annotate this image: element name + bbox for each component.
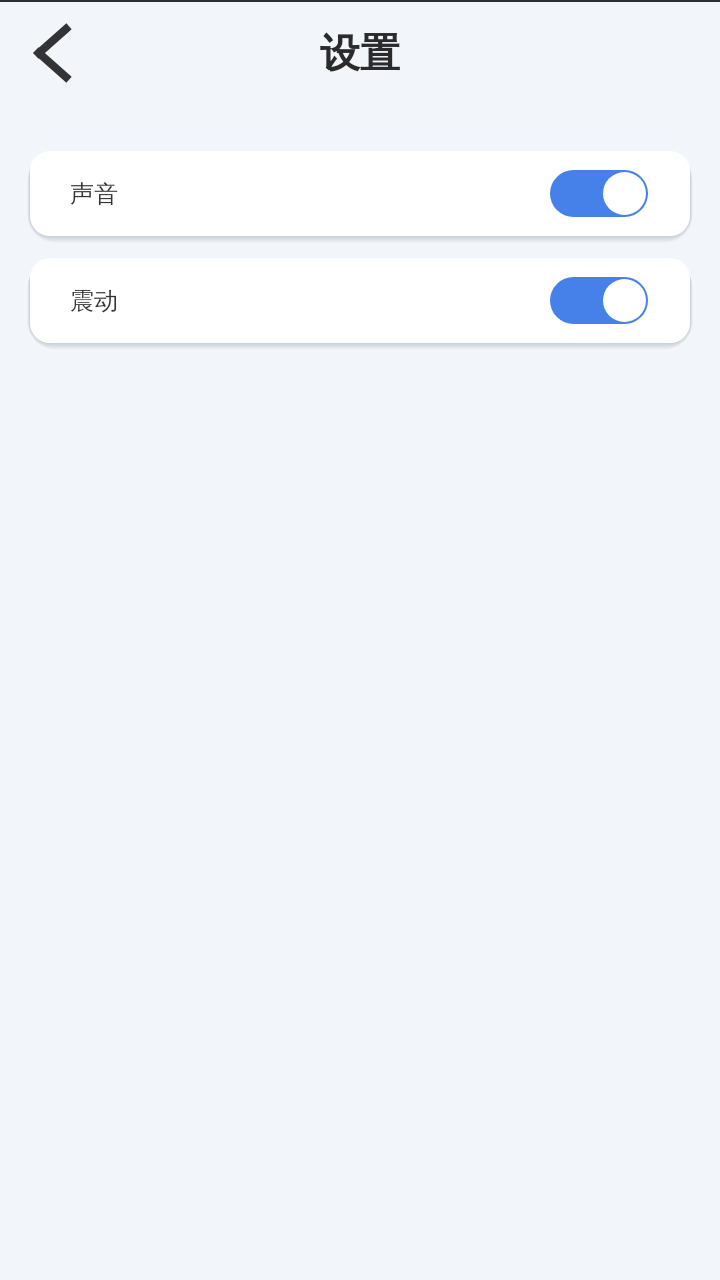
button[interactable]: 震动 [30,258,690,343]
other: 已开启 [550,170,648,217]
staticText: 声音 [70,179,118,209]
button[interactable]: 返回 [19,14,97,92]
button[interactable]: 声音 [30,151,690,236]
other: 已开启 [550,277,648,324]
staticText: 震动 [70,286,118,316]
staticText: 设置 [0,28,720,78]
